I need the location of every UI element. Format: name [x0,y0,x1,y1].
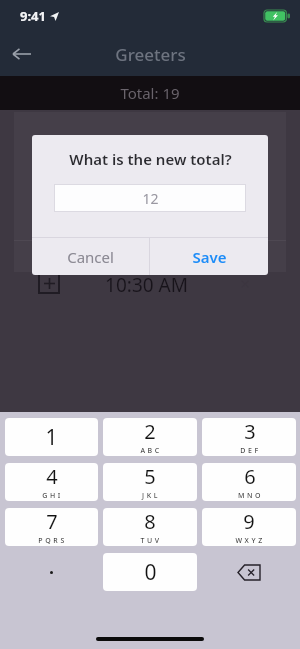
staticText: 6 [244,463,256,490]
staticText: A B C [140,446,160,456]
button[interactable]: 7 [5,508,98,546]
staticText: Save [192,247,227,267]
staticText: What is the new total? [69,149,232,169]
staticText: D E F [240,446,259,456]
staticText: 9:41 [20,7,46,25]
staticText: 4 [46,463,58,490]
staticText: Cancel [67,247,114,267]
staticText: G H I [42,491,61,501]
button[interactable]: Cancel [32,238,149,275]
button[interactable]: Back [0,32,44,76]
staticText: M N O [238,491,261,501]
button[interactable]: Add [38,272,60,294]
staticText: P Q R S [38,536,65,546]
staticText: 5 [144,463,156,490]
button[interactable]: Save [150,238,268,275]
button[interactable]: 12 [54,184,246,212]
staticText: T U V [140,536,160,546]
staticText: × [240,272,250,295]
staticText: 0 [144,558,157,587]
staticText: 1 [45,423,58,452]
staticText: J K L [142,491,158,501]
button[interactable]: 5 [103,463,197,501]
staticText: Total: 19 [120,83,180,103]
staticText: 8 [144,508,156,535]
staticText: W X Y Z [235,536,263,546]
button[interactable]: 9 [202,508,296,546]
button[interactable]: Decimal point [5,553,98,591]
button[interactable]: 0 [103,553,197,591]
button[interactable]: 8 [103,508,197,546]
staticText: 7 [46,508,58,535]
staticText: 9 [243,508,255,535]
staticText: 2 [144,418,156,445]
button[interactable]: 3 [202,418,296,456]
staticText: 12 [142,189,159,208]
staticText: 3 [244,418,256,445]
button[interactable]: 2 [103,418,197,456]
button[interactable]: 1 [5,418,98,456]
button[interactable]: Backspace [202,553,296,591]
staticText: 10:30 AM [105,272,188,298]
staticText: Greeters [115,43,186,66]
button[interactable]: 6 [202,463,296,501]
button[interactable]: 4 [5,463,98,501]
